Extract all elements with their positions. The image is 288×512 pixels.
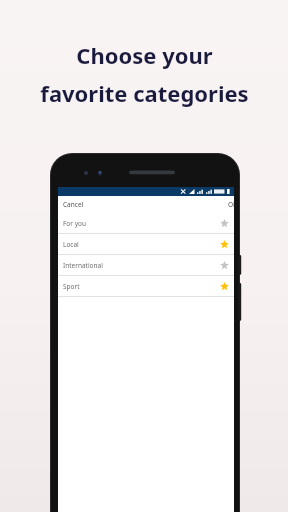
button[interactable]: Cancel	[63, 200, 84, 209]
staticText: Choose your	[76, 40, 213, 70]
staticText: For you	[63, 219, 86, 228]
staticText: International	[63, 261, 103, 270]
other: Remove favorite	[219, 239, 230, 250]
other: Remove favorite	[219, 281, 230, 292]
staticText: Sport	[63, 282, 80, 291]
button[interactable]: Local	[58, 234, 234, 255]
other: Add favorite	[219, 218, 230, 229]
staticText: Local	[63, 240, 79, 249]
staticText: favorite categories	[40, 78, 249, 108]
button[interactable]: Sport	[58, 276, 234, 297]
button[interactable]: International	[58, 255, 234, 276]
button[interactable]: OK	[228, 200, 238, 209]
staticText: Cancel	[63, 200, 84, 209]
button[interactable]: For you	[58, 213, 234, 234]
other: Add favorite	[219, 260, 230, 271]
staticText: OK	[228, 200, 238, 209]
